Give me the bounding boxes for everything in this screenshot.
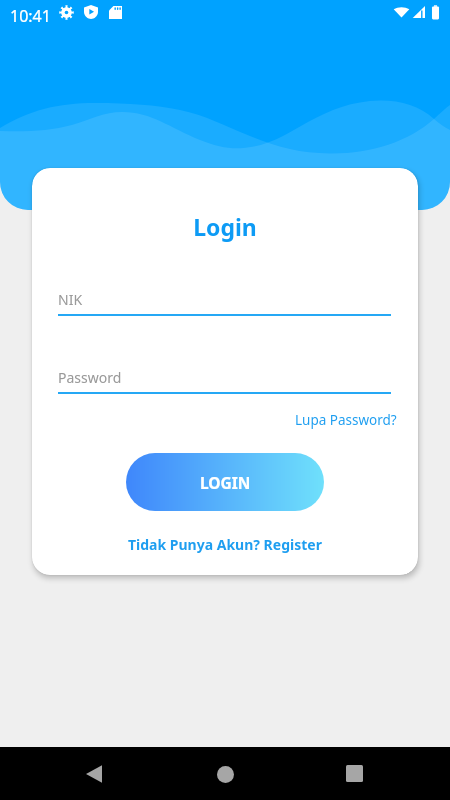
staticText: LOGIN	[200, 472, 251, 493]
button[interactable]: Tidak Punya Akun? Register	[128, 535, 322, 554]
button[interactable]: Back	[70, 750, 118, 798]
staticText: Password	[58, 368, 122, 387]
staticText: 10:41	[10, 5, 51, 27]
button[interactable]: LOGIN	[126, 453, 324, 511]
button[interactable]: Home	[201, 750, 249, 798]
staticText: Login	[32, 211, 418, 242]
button[interactable]: Recents	[330, 749, 378, 797]
button[interactable]: Lupa Password?	[295, 411, 397, 429]
staticText: NIK	[58, 290, 83, 309]
